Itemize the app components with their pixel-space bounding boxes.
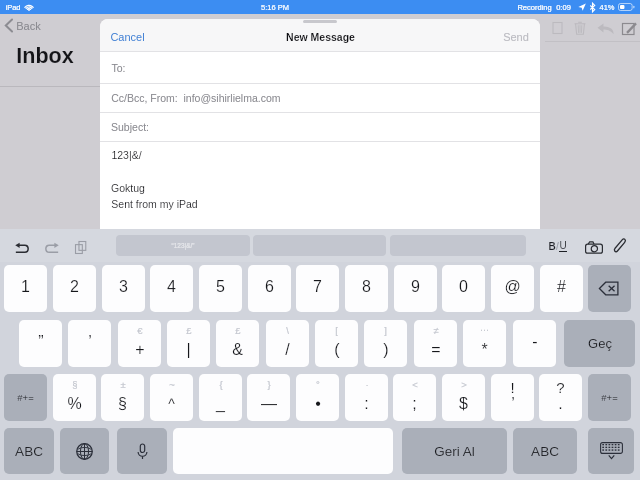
staticText: § bbox=[118, 395, 127, 413]
staticText: ± bbox=[120, 379, 126, 390]
staticText: #+= bbox=[601, 392, 618, 403]
button[interactable]: Paste bbox=[70, 237, 90, 257]
button[interactable]: Archive bbox=[548, 19, 566, 37]
staticText: & bbox=[232, 341, 243, 359]
button[interactable]: Backspace bbox=[588, 265, 631, 312]
staticText: 0 bbox=[459, 278, 468, 296]
staticText: 8 bbox=[362, 278, 371, 296]
button[interactable]: \ bbox=[266, 320, 309, 367]
button[interactable]: ? bbox=[539, 374, 582, 421]
button[interactable]: Reply bbox=[595, 18, 615, 38]
button[interactable]: 1 bbox=[4, 265, 47, 312]
button[interactable]: Cancel bbox=[110, 31, 145, 43]
button[interactable]: ” bbox=[19, 320, 62, 367]
button[interactable]: ! bbox=[491, 374, 534, 421]
staticText: ^ bbox=[168, 396, 175, 412]
button[interactable]: 0 bbox=[442, 265, 485, 312]
button[interactable]: 6 bbox=[248, 265, 291, 312]
button[interactable]: Back bbox=[5, 17, 41, 34]
staticText: • bbox=[315, 395, 321, 413]
staticText: Geri Al bbox=[434, 444, 475, 459]
button[interactable]: # bbox=[540, 265, 583, 312]
button[interactable]: ABC bbox=[4, 428, 54, 474]
button[interactable]: Send bbox=[503, 31, 529, 43]
staticText: | bbox=[186, 341, 191, 359]
button[interactable]: ° bbox=[296, 374, 339, 421]
button[interactable]: Insert photo bbox=[583, 237, 604, 258]
button[interactable]: ≠ bbox=[414, 320, 457, 367]
button[interactable]: 5 bbox=[199, 265, 242, 312]
staticText: Back bbox=[16, 20, 41, 32]
button[interactable]: ⋯ bbox=[463, 320, 506, 367]
button[interactable]: Undo bbox=[12, 237, 32, 257]
button[interactable]: 7 bbox=[296, 265, 339, 312]
button[interactable]: } bbox=[247, 374, 290, 421]
button[interactable]: { bbox=[199, 374, 242, 421]
staticText: iPad bbox=[5, 3, 21, 11]
button[interactable]: [ bbox=[315, 320, 358, 367]
button[interactable]: To: bbox=[111, 52, 540, 83]
staticText: ’ bbox=[511, 395, 515, 413]
staticText: = bbox=[431, 341, 441, 359]
staticText: #+= bbox=[17, 392, 34, 403]
button[interactable]: ABC bbox=[513, 428, 577, 474]
button[interactable]: 3 bbox=[102, 265, 145, 312]
button[interactable]: 8 bbox=[345, 265, 388, 312]
staticText: } bbox=[267, 379, 271, 390]
button[interactable]: Subject: bbox=[111, 112, 540, 141]
staticText: 41% bbox=[599, 3, 615, 11]
button[interactable]: Attach file bbox=[609, 236, 629, 256]
button[interactable]: ] bbox=[364, 320, 407, 367]
staticText: ) bbox=[383, 341, 389, 359]
button[interactable]: Redo bbox=[42, 237, 62, 257]
button[interactable]: £ bbox=[167, 320, 210, 367]
button[interactable]: @ bbox=[491, 265, 534, 312]
button[interactable]: € bbox=[118, 320, 161, 367]
button[interactable]: > bbox=[442, 374, 485, 421]
button[interactable]: Delete bbox=[571, 19, 589, 37]
button[interactable]: 4 bbox=[150, 265, 193, 312]
staticText: 123|&/ bbox=[111, 149, 142, 161]
button[interactable]: “123|&/” bbox=[116, 235, 250, 256]
button[interactable]: #+= bbox=[4, 374, 47, 421]
button[interactable]: Dictate bbox=[117, 428, 167, 474]
button[interactable]: Geri Al bbox=[402, 428, 507, 474]
staticText: ( bbox=[334, 341, 340, 359]
staticText: 5:16 PM bbox=[261, 3, 289, 11]
button[interactable]: #+= bbox=[588, 374, 631, 421]
staticText: Recording bbox=[517, 3, 552, 11]
staticText: Inbox bbox=[16, 44, 74, 68]
staticText: ~ bbox=[169, 379, 175, 390]
staticText: 0:09 bbox=[556, 3, 571, 11]
staticText: Sent from my iPad bbox=[111, 198, 198, 210]
button[interactable]: Cc/Bcc, From: bbox=[111, 83, 540, 112]
button[interactable]: Hide keyboard bbox=[588, 428, 634, 474]
staticText: New Message bbox=[286, 31, 355, 43]
staticText: # bbox=[557, 278, 566, 296]
button[interactable]: ’ bbox=[68, 320, 111, 367]
button[interactable]: 9 bbox=[394, 265, 437, 312]
staticText: 5 bbox=[216, 278, 225, 296]
button[interactable]: Switch keyboard bbox=[60, 428, 109, 474]
staticText: 2 bbox=[70, 278, 79, 296]
staticText: ° bbox=[316, 379, 320, 390]
button[interactable]: Compose bbox=[620, 19, 638, 37]
button[interactable]: £ bbox=[216, 320, 259, 367]
staticText: Geç bbox=[588, 336, 612, 351]
button[interactable]: < bbox=[393, 374, 436, 421]
staticText: % bbox=[67, 395, 82, 413]
button[interactable]: ± bbox=[101, 374, 144, 421]
button[interactable]: · bbox=[345, 374, 388, 421]
button[interactable]: - bbox=[513, 320, 556, 367]
staticText: To: bbox=[111, 62, 126, 74]
button[interactable]: 2 bbox=[53, 265, 96, 312]
staticText: [ bbox=[335, 325, 338, 336]
button[interactable]: Formatting bbox=[544, 236, 571, 255]
button[interactable]: ~ bbox=[150, 374, 193, 421]
staticText: ” bbox=[38, 333, 44, 351]
button[interactable]: Geç bbox=[564, 320, 635, 367]
button[interactable]: § bbox=[53, 374, 96, 421]
